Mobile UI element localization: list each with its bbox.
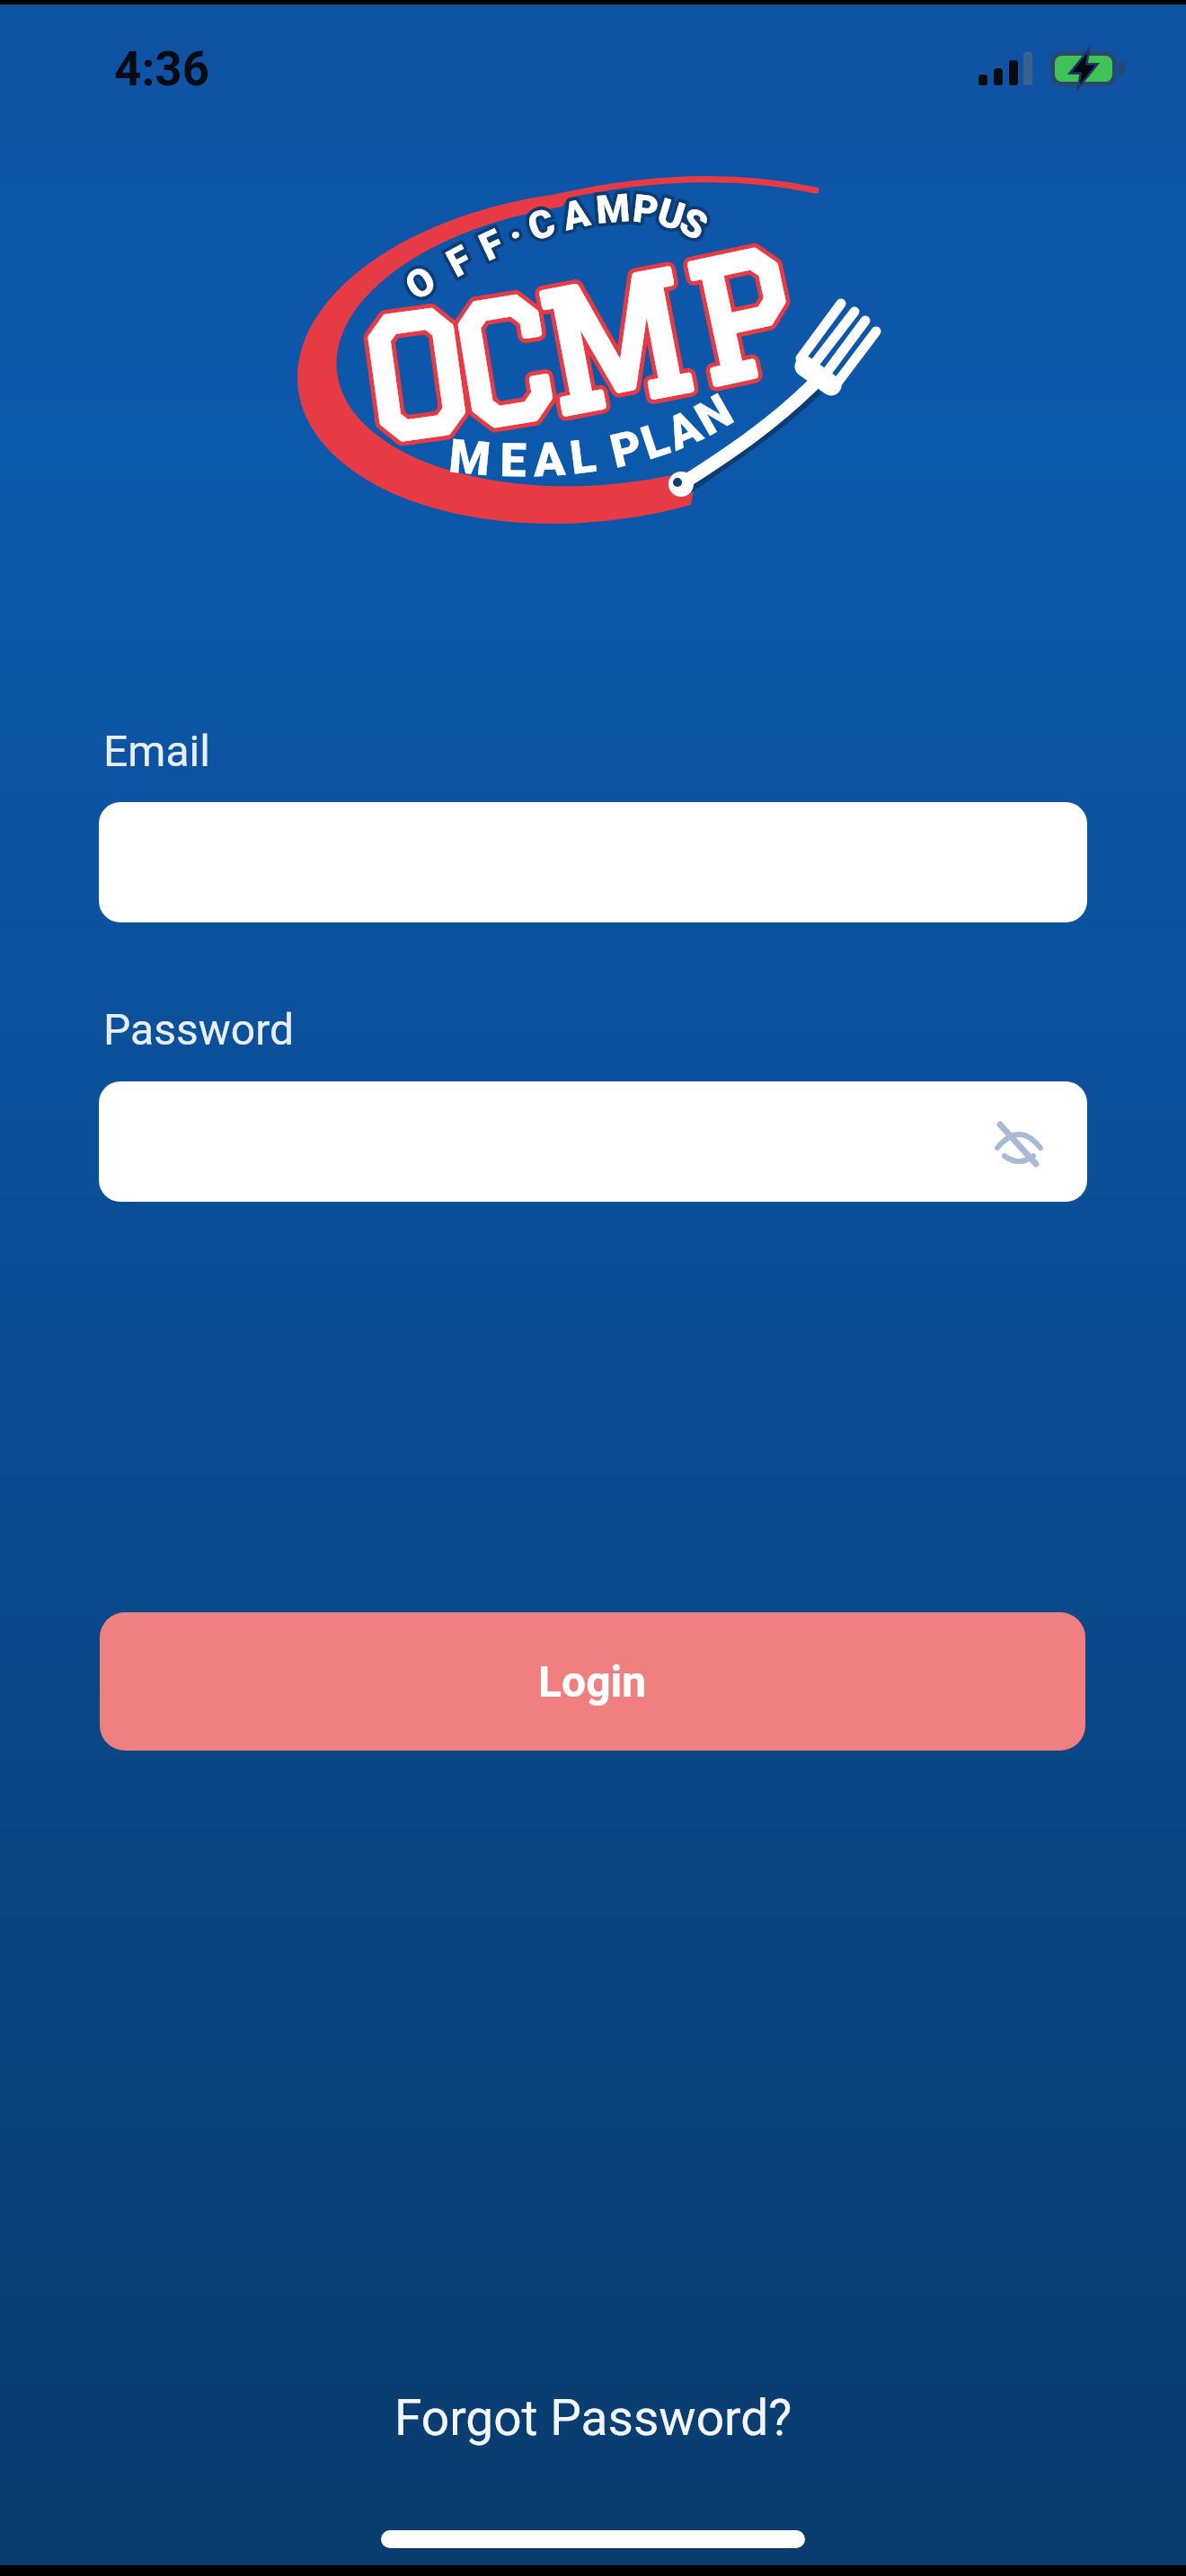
staticText: Forgot Password? xyxy=(394,2389,792,2447)
button[interactable]: Forgot Password? xyxy=(394,2389,792,2447)
button[interactable]: Login xyxy=(100,1612,1085,1751)
button[interactable] xyxy=(99,802,1087,922)
staticText: 4:36 xyxy=(114,41,210,97)
staticText: Login xyxy=(538,1656,647,1707)
staticText: Password xyxy=(103,1004,295,1054)
staticText: Email xyxy=(103,726,210,776)
button[interactable] xyxy=(99,1081,1087,1202)
